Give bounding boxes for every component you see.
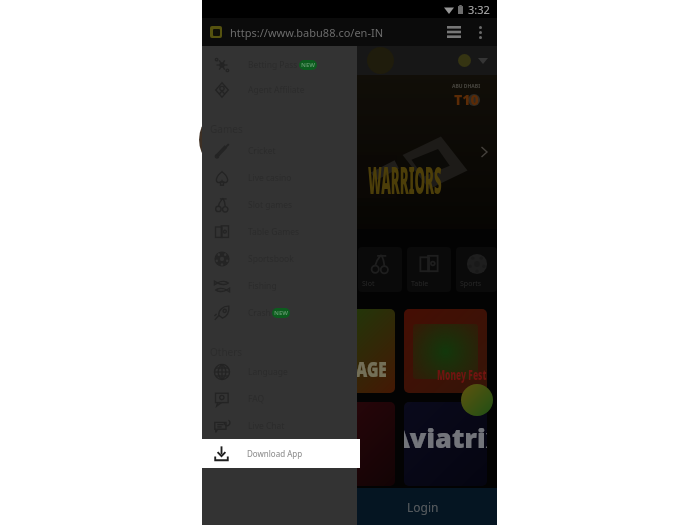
- button[interactable]: AGE: [312, 309, 395, 393]
- button[interactable]: Money Festival: [404, 309, 487, 393]
- staticText: Aviatrix: [404, 421, 487, 456]
- button[interactable]: [221, 402, 303, 486]
- staticText: Sports: [460, 279, 482, 289]
- staticText: Download App: [247, 448, 303, 459]
- button[interactable]: Sports: [456, 247, 497, 292]
- staticText: Slot: [362, 279, 375, 289]
- staticText: AGE: [339, 354, 369, 382]
- button[interactable]: Login: [349, 488, 497, 525]
- staticText: Money Festival: [414, 365, 479, 383]
- button[interactable]: Table: [407, 247, 451, 292]
- staticText: Login: [407, 499, 439, 515]
- button[interactable]: Aviatrix: [404, 402, 487, 486]
- button[interactable]: Next banner: [475, 143, 493, 161]
- button[interactable]: Language: [458, 54, 488, 67]
- button[interactable]: Home: [367, 47, 394, 74]
- button[interactable]: Betting Pass: [202, 51, 357, 78]
- staticText: T10: [454, 90, 479, 109]
- staticText: Table: [411, 279, 429, 289]
- button[interactable]: [312, 402, 395, 486]
- staticText: WARRIORS: [368, 153, 442, 204]
- button[interactable]: Slot: [358, 247, 402, 292]
- button[interactable]: Crash: [202, 299, 357, 326]
- staticText: https://www.babu88.co/en-IN: [230, 25, 384, 40]
- staticText: 3:32: [468, 2, 490, 17]
- button[interactable]: Download App: [202, 439, 360, 468]
- staticText: NEW: [274, 309, 289, 317]
- button[interactable]: More options: [471, 23, 489, 41]
- button[interactable]: Tabs: [444, 22, 464, 42]
- button[interactable]: Cricket: [211, 247, 255, 292]
- staticText: Cricket: [215, 279, 238, 289]
- staticText: ABU DHABI: [452, 83, 481, 90]
- staticText: NEW: [301, 61, 316, 69]
- button[interactable]: AGE: [221, 309, 303, 393]
- button[interactable]: Live support: [461, 384, 493, 416]
